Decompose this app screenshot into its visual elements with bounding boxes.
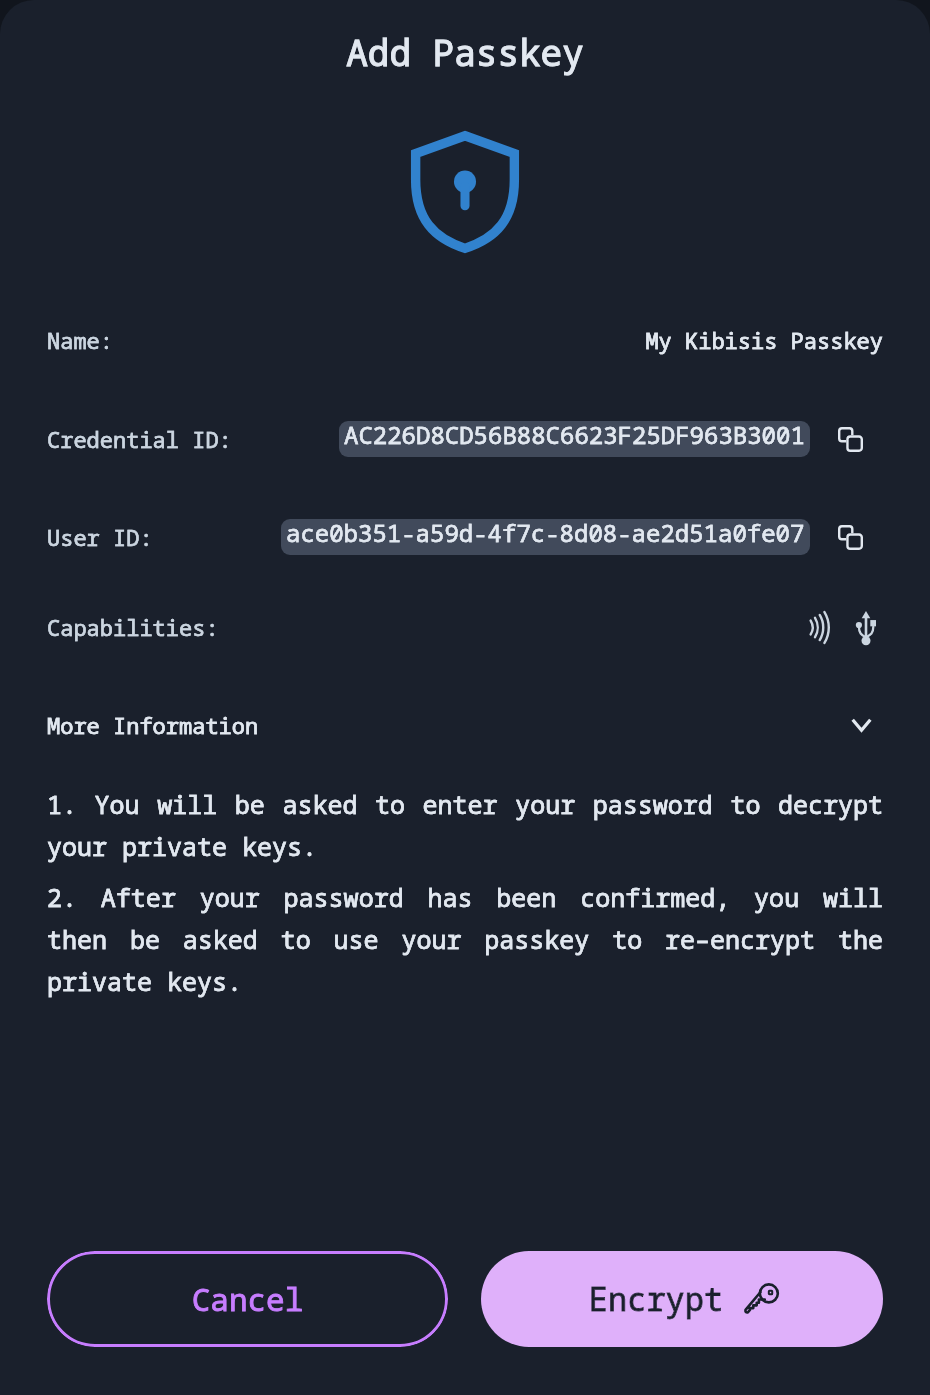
staticText: Name: bbox=[47, 325, 207, 355]
staticText: More Information bbox=[47, 710, 307, 740]
staticText: My Kibisis Passkey bbox=[643, 325, 883, 355]
staticText: Encrypt bbox=[588, 1277, 724, 1321]
button[interactable]: Cancel bbox=[47, 1251, 448, 1347]
staticText: 2. After your password has been confirme… bbox=[47, 880, 883, 998]
staticText: Add Passkey bbox=[0, 28, 930, 77]
staticText: ace0b351-a59d-4f7c-8d08-ae2d51a0fe07 bbox=[286, 519, 805, 549]
staticText: AC226D8CD56B88C6623F25DF963B3001 bbox=[344, 421, 805, 451]
staticText: Capabilities: bbox=[47, 612, 267, 642]
staticText: Capabilities: bbox=[47, 612, 267, 642]
button[interactable]: USB bbox=[849, 606, 883, 648]
staticText: User ID: bbox=[47, 522, 277, 552]
staticText: Cancel bbox=[47, 1278, 448, 1320]
staticText: Add Passkey bbox=[0, 28, 930, 77]
staticText: AC226D8CD56B88C6623F25DF963B3001 bbox=[344, 421, 805, 451]
staticText: 2. After your password has been confirme… bbox=[47, 880, 883, 998]
staticText: User ID: bbox=[47, 522, 277, 552]
button[interactable]: Copy bbox=[824, 413, 876, 465]
staticText: Cancel bbox=[47, 1278, 448, 1320]
staticText: Encrypt bbox=[588, 1277, 724, 1321]
staticText: Credential ID: bbox=[47, 424, 277, 454]
staticText: More Information bbox=[47, 710, 307, 740]
staticText: 1. You will be asked to enter your passw… bbox=[47, 787, 883, 863]
button[interactable]: More Information bbox=[0, 704, 930, 746]
staticText: ace0b351-a59d-4f7c-8d08-ae2d51a0fe07 bbox=[286, 519, 805, 549]
staticText: Credential ID: bbox=[47, 424, 277, 454]
staticText: 1. You will be asked to enter your passw… bbox=[47, 787, 883, 863]
button[interactable]: Copy bbox=[824, 511, 876, 563]
button[interactable]: NFC bbox=[802, 606, 836, 648]
staticText: My Kibisis Passkey bbox=[643, 325, 883, 355]
staticText: Name: bbox=[47, 325, 207, 355]
button[interactable]: Encrypt bbox=[481, 1251, 883, 1347]
